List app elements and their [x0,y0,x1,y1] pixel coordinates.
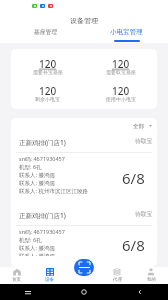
button[interactable]: Recents [25,290,31,295]
staticText: 正新鸡排(门店1) [19,138,66,147]
staticText: 使用中小电宝 [106,96,136,102]
staticText: 代理 [113,277,122,283]
staticText: 首页 [12,277,21,283]
button[interactable]: 全部 [131,120,154,131]
button[interactable]: 首页 [0,268,33,283]
staticText: 机型: 6孔 [19,236,42,244]
button[interactable]: 基座管理 [0,26,84,42]
staticText: 我的 [147,277,156,283]
button[interactable]: 扫一扫 [74,259,94,276]
staticText: 正新鸡排(门店1) [19,211,66,220]
staticText: sn码: 4671930457 [19,228,65,236]
staticText: 120 [112,84,130,98]
staticText: 需要补宝基座 [33,69,63,75]
staticText: 小电宝管理 [110,28,143,36]
staticText: 待取宝 [135,137,153,144]
button[interactable]: Back [137,289,143,295]
staticText: 基座管理 [34,28,58,35]
staticText: 联系人: 滕鸿儒 [19,252,55,256]
button[interactable]: 设备 [33,268,66,283]
staticText: 需要取宝基座 [106,69,136,75]
staticText: 联系人: 滕鸿儒 [19,179,55,187]
staticText: 120 [112,57,130,71]
staticText: sn码: 4671930457 [19,155,65,163]
button[interactable]: 正新鸡排(门店1) [11,206,157,267]
staticText: 机型: 6孔 [19,163,42,171]
staticText: 6/8 [122,235,145,255]
button[interactable]: 正新鸡排(门店1) [11,133,157,206]
staticText: 联系人: 滕鸿儒 [19,244,55,252]
staticText: 联系人: 滕鸿儒 [19,171,55,179]
staticText: 120 [39,57,57,71]
button[interactable]: 小电宝管理 [84,26,168,42]
button[interactable]: 我的 [134,268,168,283]
staticText: 待取宝 [135,210,153,217]
staticText: 剩余小电宝 [35,96,60,102]
button[interactable]: 代理 [100,268,134,283]
button[interactable]: Home [81,289,87,295]
staticText: 设备 [45,277,54,283]
staticText: 联系人: 杭州市滨江区江陵路 [19,187,88,195]
staticText: 设备管理 [70,16,98,25]
staticText: 全部 [133,123,144,130]
staticText: 6/8 [122,168,145,188]
staticText: 120 [39,84,57,98]
